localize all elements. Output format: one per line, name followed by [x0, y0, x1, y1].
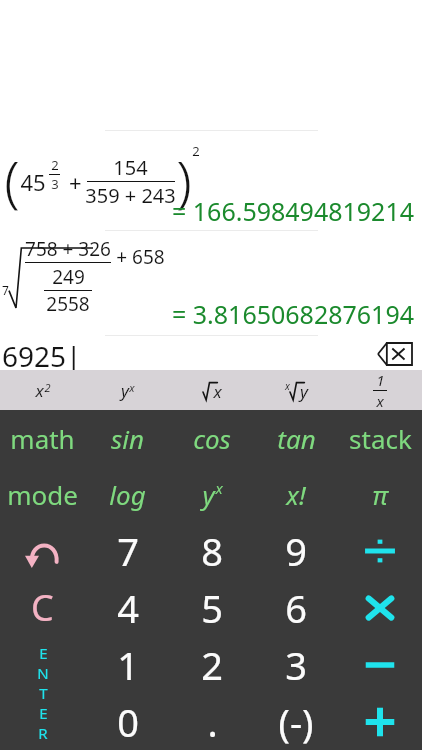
staticText: 45: [20, 167, 46, 197]
staticText: 6925|: [2, 337, 82, 370]
button[interactable]: Multiply: [338, 579, 422, 636]
button[interactable]: tan: [254, 410, 338, 466]
button[interactable]: 0: [85, 693, 170, 750]
staticText: 7: [2, 282, 9, 298]
staticText: x: [215, 478, 223, 498]
staticText: tan: [277, 421, 316, 456]
staticText: 359 + 243: [85, 182, 176, 209]
button[interactable]: E: [0, 636, 85, 750]
staticText: x: [35, 379, 44, 402]
staticText: 7: [117, 525, 139, 577]
staticText: 1: [117, 639, 139, 691]
button[interactable]: 3: [254, 636, 338, 693]
staticText: (: [4, 142, 20, 218]
staticText: E: [39, 643, 48, 663]
button[interactable]: 9: [254, 523, 338, 579]
button[interactable]: 1: [85, 636, 170, 693]
button[interactable]: stack: [338, 410, 422, 466]
staticText: E: [39, 703, 48, 723]
staticText: stack: [349, 421, 412, 456]
staticText: math: [10, 421, 75, 456]
staticText: 6: [285, 582, 307, 634]
staticText: 2: [192, 142, 200, 160]
staticText: y: [300, 380, 308, 403]
staticText: x!: [286, 477, 306, 512]
staticText: 2558: [46, 291, 90, 317]
staticText: cos: [193, 421, 231, 456]
staticText: (-): [278, 696, 314, 748]
button[interactable]: 4: [85, 579, 170, 636]
staticText: 1: [376, 370, 385, 390]
staticText: ): [176, 142, 192, 218]
staticText: log: [109, 477, 146, 512]
staticText: 9: [285, 525, 307, 577]
staticText: +: [60, 167, 85, 197]
staticText: 0: [117, 696, 139, 748]
button[interactable]: sin: [85, 410, 170, 466]
staticText: y: [202, 477, 215, 512]
staticText: 3: [51, 175, 59, 193]
button[interactable]: x: [170, 370, 254, 410]
button[interactable]: 6: [254, 579, 338, 636]
button[interactable]: x: [254, 370, 338, 410]
button[interactable]: 7: [85, 523, 170, 579]
staticText: = 3.81650682876194: [0, 297, 414, 331]
button[interactable]: C: [0, 579, 85, 636]
button[interactable]: Undo: [0, 523, 85, 579]
button[interactable]: x!: [254, 466, 338, 523]
staticText: x: [285, 379, 290, 393]
staticText: 5: [201, 582, 223, 634]
button[interactable]: .: [170, 693, 254, 750]
button[interactable]: cos: [170, 410, 254, 466]
staticText: 154: [113, 154, 148, 181]
staticText: sin: [111, 421, 144, 456]
staticText: N: [37, 663, 49, 683]
staticText: 2: [201, 639, 223, 691]
button[interactable]: x: [0, 370, 85, 410]
button[interactable]: math: [0, 410, 85, 466]
staticText: x: [129, 380, 135, 395]
staticText: .: [207, 696, 218, 748]
staticText: T: [39, 683, 48, 703]
button[interactable]: 5: [170, 579, 254, 636]
button[interactable]: (-): [254, 693, 338, 750]
button[interactable]: 1: [338, 370, 422, 410]
button[interactable]: y: [85, 370, 170, 410]
button[interactable]: log: [85, 466, 170, 523]
staticText: 2: [51, 156, 59, 174]
button[interactable]: Subtract: [338, 636, 422, 693]
staticText: = 166.598494819214: [0, 194, 414, 228]
staticText: x: [213, 380, 222, 403]
button[interactable]: Add: [338, 693, 422, 750]
staticText: R: [38, 723, 48, 743]
staticText: π: [372, 477, 388, 512]
staticText: mode: [7, 477, 78, 512]
button[interactable]: y: [170, 466, 254, 523]
staticText: 3: [285, 639, 307, 691]
button[interactable]: Backspace: [374, 340, 416, 368]
staticText: 8: [201, 525, 223, 577]
staticText: + 658: [111, 244, 165, 270]
staticText: y: [121, 379, 129, 402]
button[interactable]: Divide: [338, 523, 422, 579]
button[interactable]: π: [338, 466, 422, 523]
staticText: 249: [52, 264, 85, 290]
staticText: C: [31, 583, 54, 632]
button[interactable]: 8: [170, 523, 254, 579]
staticText: 758 + 326: [25, 236, 111, 262]
button[interactable]: 2: [170, 636, 254, 693]
staticText: 2: [44, 380, 51, 395]
staticText: 4: [117, 582, 139, 634]
button[interactable]: mode: [0, 466, 85, 523]
staticText: x: [376, 391, 384, 410]
